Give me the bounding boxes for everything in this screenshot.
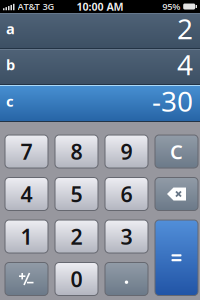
staticText: 10:00 AM bbox=[76, 0, 123, 14]
staticText: 5 bbox=[70, 180, 82, 208]
staticText: b bbox=[6, 55, 15, 74]
button[interactable]: 9 bbox=[105, 135, 148, 168]
button[interactable]: 6 bbox=[105, 177, 148, 210]
button[interactable]: 5 bbox=[55, 177, 98, 210]
staticText: 3 bbox=[120, 222, 132, 251]
button[interactable]: Decimal point bbox=[105, 262, 148, 295]
button[interactable]: Change sign bbox=[5, 262, 48, 295]
button[interactable]: a bbox=[0, 13, 200, 49]
button[interactable]: 1 bbox=[5, 220, 48, 253]
staticText: 95% bbox=[162, 0, 180, 13]
button[interactable]: 2 bbox=[55, 220, 98, 253]
button[interactable]: 0 bbox=[55, 262, 98, 295]
staticText: 7 bbox=[20, 137, 32, 166]
staticText: 1 bbox=[20, 222, 32, 251]
button[interactable]: 4 bbox=[5, 177, 48, 210]
staticText: -30 bbox=[152, 82, 193, 120]
button[interactable]: Delete bbox=[155, 177, 198, 210]
staticText: 8 bbox=[70, 137, 82, 166]
button[interactable]: 8 bbox=[55, 135, 98, 168]
staticText: a bbox=[6, 19, 15, 38]
button[interactable]: 7 bbox=[5, 135, 48, 168]
staticText: 0 bbox=[70, 265, 82, 293]
button[interactable]: c bbox=[0, 85, 200, 122]
staticText: AT&T bbox=[17, 0, 39, 13]
button[interactable]: 3 bbox=[105, 220, 148, 253]
staticText: 6 bbox=[120, 180, 132, 208]
staticText: c bbox=[6, 91, 14, 111]
staticText: 2 bbox=[70, 222, 82, 251]
button[interactable]: Equals bbox=[155, 220, 198, 295]
staticText: 4 bbox=[177, 46, 193, 83]
staticText: 3G bbox=[42, 0, 54, 13]
button[interactable]: b bbox=[0, 49, 200, 85]
button[interactable]: C bbox=[155, 135, 198, 168]
staticText: 4 bbox=[20, 180, 32, 208]
staticText: 2 bbox=[177, 10, 193, 47]
staticText: C bbox=[170, 138, 183, 165]
staticText: 9 bbox=[120, 137, 132, 166]
